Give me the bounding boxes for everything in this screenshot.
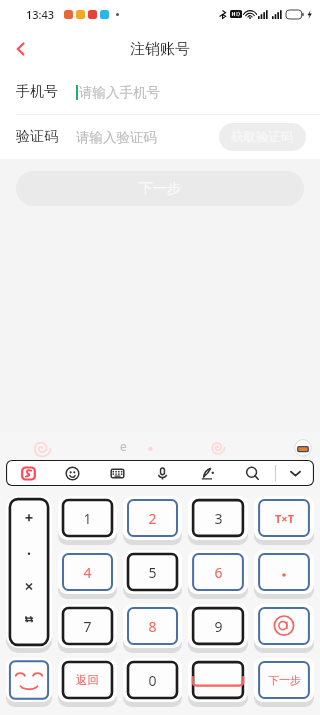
staticText: 1 <box>83 509 92 528</box>
staticText: T×T <box>275 511 294 526</box>
staticText: 13:43 <box>26 7 55 22</box>
button[interactable]: Keyboard layout <box>95 460 140 486</box>
button[interactable]: 请输入验证码 <box>76 129 219 146</box>
button[interactable]: Search <box>230 460 275 486</box>
button[interactable]: 8 <box>123 604 182 652</box>
button[interactable]: 返回 <box>58 658 117 706</box>
staticText: 获取验证码 <box>231 129 294 145</box>
button[interactable]: 2 <box>123 496 182 544</box>
staticText: 5 <box>148 563 157 582</box>
button[interactable]: Emoji <box>50 460 95 486</box>
staticText: 下一步 <box>268 673 301 687</box>
button[interactable]: 3 <box>188 496 248 544</box>
button[interactable]: T×T <box>254 496 314 544</box>
button[interactable]: Key <box>188 658 248 706</box>
button[interactable]: Hide keyboard <box>276 460 314 486</box>
button[interactable]: Voice input <box>140 460 185 486</box>
button[interactable]: 手机号 <box>0 70 320 114</box>
button[interactable]: 5 <box>123 550 182 598</box>
staticText: e <box>120 438 127 454</box>
staticText: 8 <box>148 617 157 636</box>
staticText: 注销账号 <box>130 40 190 59</box>
button[interactable]: 获取验证码 <box>219 123 306 151</box>
staticText: 验证码 <box>16 128 58 146</box>
button[interactable] <box>254 604 314 652</box>
button[interactable]: 下一步 <box>254 658 314 706</box>
button[interactable]: Key <box>6 658 52 706</box>
staticText: 9 <box>214 617 223 636</box>
button[interactable]: 7 <box>58 604 117 652</box>
button[interactable]: 9 <box>188 604 248 652</box>
staticText: 请输入验证码 <box>76 129 157 146</box>
staticText: 7 <box>83 617 92 636</box>
staticText: 4 <box>83 563 92 582</box>
button[interactable]: 0 <box>123 658 182 706</box>
button[interactable]: 4 <box>58 550 117 598</box>
button[interactable]: 1 <box>58 496 117 544</box>
staticText: 请输入手机号 <box>79 84 160 101</box>
staticText: 6 <box>214 563 223 582</box>
button[interactable]: Back <box>0 28 42 70</box>
staticText: 0 <box>148 671 157 690</box>
button[interactable]: Key <box>6 496 52 652</box>
staticText: 返回 <box>76 673 99 687</box>
staticText: 下一步 <box>139 180 181 198</box>
button[interactable]: Sogou input <box>6 460 50 486</box>
button[interactable]: Handwriting <box>185 460 230 486</box>
staticText: 手机号 <box>16 83 58 101</box>
staticText: 2 <box>148 509 157 528</box>
button[interactable]: 6 <box>188 550 248 598</box>
button[interactable] <box>254 550 314 598</box>
staticText: 3 <box>214 509 223 528</box>
